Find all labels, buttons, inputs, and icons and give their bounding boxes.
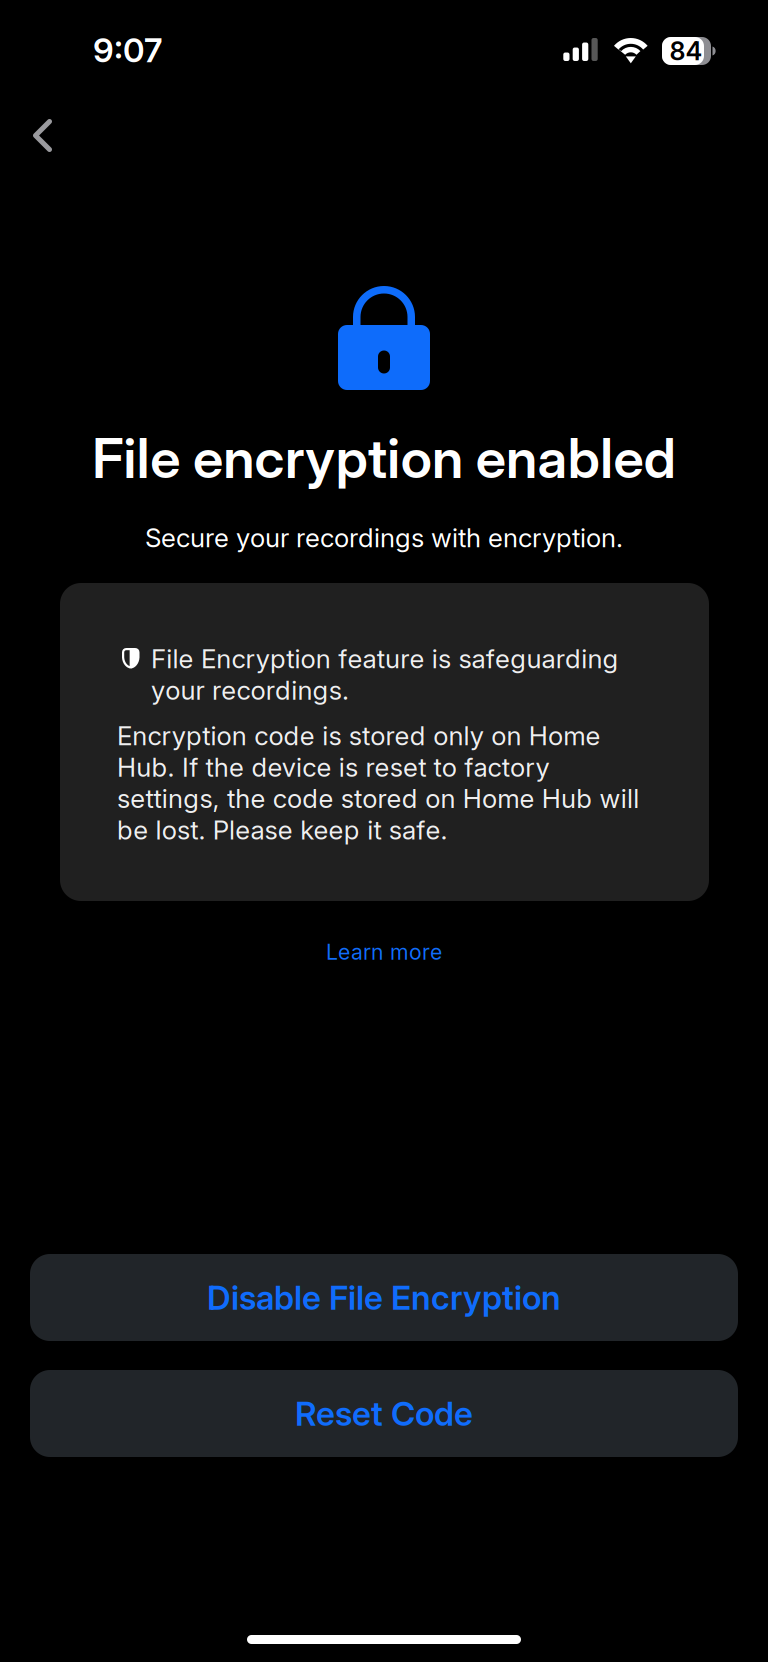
staticText: Reset Code — [295, 1393, 473, 1434]
button[interactable]: Back — [27, 104, 83, 168]
button[interactable]: Disable File Encryption — [30, 1254, 738, 1341]
staticText: File encryption enabled — [92, 425, 676, 491]
button[interactable]: Reset Code — [30, 1370, 738, 1457]
staticText: Disable File Encryption — [207, 1277, 561, 1318]
staticText: Encryption code is stored only on Home H… — [117, 720, 639, 846]
staticText: Secure your recordings with encryption. — [145, 522, 623, 553]
staticText: 84 — [669, 36, 702, 66]
button[interactable]: Learn more — [302, 925, 466, 979]
staticText: 9:07 — [93, 30, 162, 70]
staticText: File Encryption feature is safeguarding … — [151, 643, 619, 706]
staticText: Learn more — [326, 939, 442, 965]
